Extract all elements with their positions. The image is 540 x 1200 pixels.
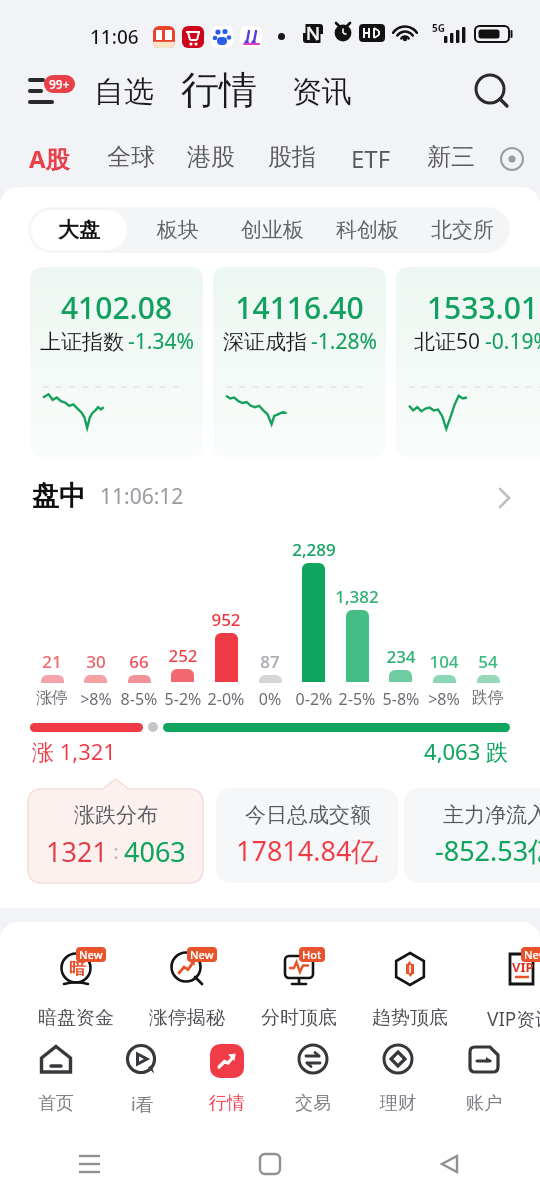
staticText: 全球 [107,142,155,172]
staticText: 5-2% [153,688,213,710]
button[interactable]: Menu [20,66,82,116]
staticText: 自选 [94,73,154,111]
staticText: 理财 [380,1092,416,1115]
staticText: 1533.01 [396,287,540,328]
staticText: 234 [371,645,431,668]
staticText: >8% [66,688,126,710]
button[interactable]: 板块 [133,210,222,250]
button[interactable]: 全球 [99,137,163,177]
staticText: 港股 [187,142,235,172]
button[interactable]: 主力净流入 [404,788,540,883]
button[interactable]: 大盘 [31,210,127,250]
staticText: 952 [196,608,256,631]
button[interactable]: 账户 [442,1042,526,1115]
staticText: 板块 [157,217,199,243]
staticText: Hot [302,947,322,962]
button[interactable]: 暗 [21,937,131,1029]
staticText: i看 [131,1092,154,1117]
staticText: 暗 [69,958,86,979]
button[interactable]: 涨跌分布 [28,779,203,883]
staticText: VIP资讯 [487,1006,540,1031]
button[interactable]: 自选 [86,67,162,117]
button[interactable]: 新三 [419,137,483,177]
button[interactable]: 14116.40 [213,267,386,457]
staticText: VIP [512,958,534,976]
staticText: 暗盘资金 [38,1006,114,1030]
staticText: 66 [109,650,169,673]
staticText: ETF [351,142,391,175]
button[interactable]: A股 [21,137,78,180]
staticText: 深证成指 [223,329,307,355]
staticText: 盘中 [32,479,86,513]
staticText: 交易 [295,1092,331,1115]
button[interactable]: New [132,937,242,1029]
staticText: 1,382 [327,585,387,608]
staticText: 今日总成交额 [245,802,371,828]
staticText: 4,063 跌 [300,736,508,766]
staticText: 30 [66,650,126,673]
staticText: 54 [458,650,518,673]
staticText: 大盘 [58,217,100,243]
staticText: 4102.08 [30,287,203,328]
button[interactable]: Hot [244,937,354,1029]
staticText: A股 [29,142,70,175]
staticText: 北交所 [431,217,494,243]
staticText: 涨 1,321 [32,736,116,766]
button[interactable]: VIP [466,937,540,1029]
staticText: 主力净流入 [443,802,540,828]
staticText: 4063 [124,833,186,870]
staticText: 0% [240,688,300,710]
button[interactable]: 首页 [14,1042,98,1115]
staticText: 14116.40 [213,287,386,328]
staticText: 行情 [181,66,257,114]
staticText: 2-0% [196,688,256,710]
staticText: 11:06:12 [100,482,184,511]
button[interactable]: Search [466,66,518,118]
staticText: -1.34% [128,327,194,356]
staticText: 1321 [46,833,108,870]
staticText: 8-5% [109,688,169,710]
staticText: 2-5% [327,688,387,710]
staticText: 21 [22,650,82,673]
staticText: 252 [153,644,213,667]
button[interactable]: 行情 [173,60,265,120]
staticText: 上证指数 [40,329,124,355]
staticText: 99+ [49,76,70,92]
staticText: : [108,838,124,865]
staticText: New [524,947,540,962]
staticText: New [79,947,103,962]
staticText: 17814.84亿 [236,832,379,869]
button[interactable]: ETF [343,137,399,180]
button[interactable]: 行情 [185,1042,269,1115]
button[interactable]: 4102.08 [30,267,203,457]
staticText: -1.28% [311,327,377,356]
button[interactable]: 科创板 [323,210,412,250]
staticText: 涨停揭秘 [149,1006,225,1030]
staticText: 5-8% [371,688,431,710]
button[interactable]: 理财 [356,1042,440,1115]
staticText: 首页 [38,1092,74,1115]
staticText: 趋势顶底 [372,1006,448,1030]
staticText: -852.53亿 [435,832,540,869]
button[interactable]: 趋势顶底 [355,937,465,1029]
button[interactable]: 资讯 [284,67,360,117]
button[interactable]: i看 [100,1042,184,1117]
staticText: 104 [414,650,474,673]
button[interactable]: 交易 [271,1042,355,1115]
button[interactable]: 股指 [260,137,324,177]
staticText: 分时顶底 [261,1006,337,1030]
staticText: 87 [240,650,300,673]
staticText: 涨跌分布 [74,802,158,828]
staticText: 创业板 [241,217,304,243]
button[interactable]: 北交所 [418,210,507,250]
staticText: 股指 [268,142,316,172]
button[interactable]: 创业板 [228,210,317,250]
button[interactable]: More categories [492,139,532,179]
staticText: 资讯 [292,73,352,111]
button[interactable]: 今日总成交额 [216,788,398,883]
button[interactable]: 港股 [179,137,243,177]
button[interactable]: 盘中 [28,476,518,516]
staticText: 5G [432,21,445,35]
staticText: 跌停 [458,688,518,708]
button[interactable]: 1533.01 [396,267,540,457]
